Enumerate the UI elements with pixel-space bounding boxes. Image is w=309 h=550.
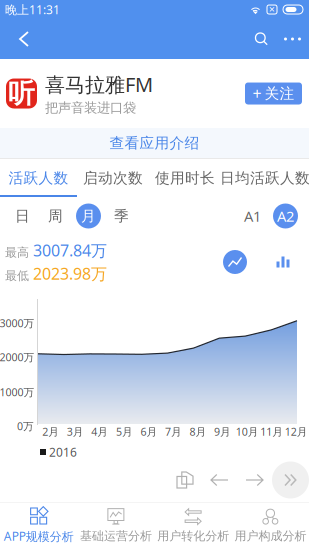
button[interactable]: Previous [202,462,237,497]
staticText: 用户构成分析 [234,529,306,543]
button[interactable]: More [278,19,309,58]
staticText: 日均活跃人数 [220,169,309,187]
button[interactable]: 用户转化分析 [154,502,232,549]
button[interactable]: Back [0,19,42,59]
button[interactable]: 查看应用介绍 [0,128,309,158]
staticText: 4月 [91,424,108,439]
staticText: 2016 [46,444,77,460]
staticText: 9月 [214,424,231,439]
staticText: 1000万 [0,385,34,399]
staticText: 听 [8,77,35,110]
staticText: A1 [244,206,261,226]
button[interactable]: Bar chart [269,247,297,277]
staticText: 用户转化分析 [157,529,229,543]
staticText: + [252,83,261,104]
staticText: 晚上11:31 [5,1,60,17]
staticText: 最高 [5,245,29,260]
button[interactable]: A1 [236,201,269,231]
staticText: 日 [15,207,30,225]
button[interactable]: APP规模分析 [0,502,77,549]
button[interactable]: 使用时长 [149,161,221,195]
button[interactable]: + [245,82,302,104]
button[interactable]: 活跃人数 [0,161,77,195]
button[interactable]: Expand [272,461,309,498]
staticText: ✕ [268,5,275,14]
staticText: 7月 [165,424,182,439]
staticText: 使用时长 [155,169,215,187]
staticText: 6月 [140,424,157,439]
button[interactable]: 启动次数 [77,161,149,195]
staticText: 把声音装进口袋 [45,100,136,116]
staticText: 3007.84万 [33,240,107,261]
staticText: 2023.98万 [33,263,107,284]
staticText: 关注 [264,84,294,102]
button[interactable]: Compare [168,462,202,498]
button[interactable]: 基础运营分析 [77,502,154,549]
staticText: 月 [81,207,96,225]
staticText: 12月 [285,424,308,439]
staticText: 10月 [236,424,259,439]
staticText: 5月 [116,424,133,439]
staticText: APP规模分析 [4,528,74,544]
staticText: 查看应用介绍 [109,134,199,152]
button[interactable]: Line chart [219,246,251,278]
staticText: A2 [277,206,294,226]
button[interactable]: 季 [105,201,138,231]
staticText: 8月 [189,424,206,439]
staticText: 0万 [17,419,34,433]
staticText: 11月 [260,424,283,439]
button[interactable]: 用户构成分析 [232,502,309,549]
staticText: 3月 [67,424,84,439]
staticText: 季 [114,207,129,225]
button[interactable]: 日 [6,201,39,231]
staticText: 2000万 [0,350,34,364]
button[interactable]: 周 [39,201,72,231]
staticText: 基础运营分析 [80,529,152,543]
staticText: 活跃人数 [8,169,68,187]
button[interactable]: Next [237,462,272,497]
button[interactable]: 月 [72,201,105,231]
button[interactable]: Search [243,19,278,58]
staticText: 2月 [42,424,59,439]
staticText: 最低 [5,268,29,283]
button[interactable]: A2 [269,201,302,231]
staticText: 喜马拉雅FM [45,71,153,98]
button[interactable]: 日均活跃人数 [221,161,309,195]
staticText: 周 [48,207,63,225]
staticText: 3000万 [0,316,34,330]
staticText: 启动次数 [83,169,143,187]
